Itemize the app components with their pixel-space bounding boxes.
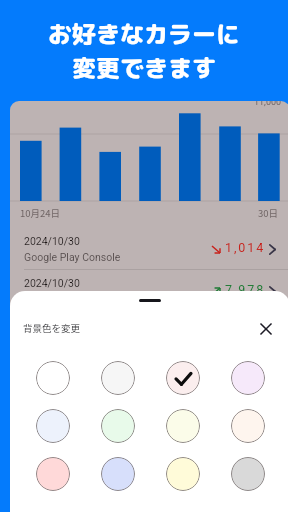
button[interactable]: 背景色を選択 [85, 402, 150, 450]
staticText: 30日 [258, 206, 279, 220]
staticText: 背景色を変更 [23, 321, 81, 335]
staticText: 10月24日 [20, 206, 61, 220]
button[interactable]: 背景色を選択 [20, 402, 85, 450]
staticText: 11,000 [254, 101, 282, 108]
staticText: 2024/10/30 [24, 235, 80, 247]
button[interactable]: 背景色を選択 [20, 450, 85, 498]
button[interactable]: 背景色を選択 [150, 354, 215, 402]
button[interactable]: 背景色を選択 [150, 450, 215, 498]
button[interactable]: 背景色を選択 [85, 450, 150, 498]
button[interactable]: 2024/10/30 [10, 231, 288, 273]
staticText: お好きなカラーに [0, 17, 288, 50]
button[interactable]: 背景色を選択 [215, 450, 280, 498]
staticText: 7,978 [225, 282, 266, 297]
button[interactable]: 背景色を選択 [85, 354, 150, 402]
button[interactable]: 2024/10/30 [10, 273, 288, 315]
button[interactable]: 背景色を選択 [150, 402, 215, 450]
staticText: 変更できます [0, 51, 288, 84]
staticText: 1,014 [225, 240, 266, 255]
staticText: 2024/10/30 [24, 277, 80, 289]
staticText: Google Play Console [24, 251, 121, 263]
button[interactable]: 背景色を選択 [215, 402, 280, 450]
button[interactable]: 背景色を選択 [20, 354, 85, 402]
button[interactable]: 閉じる [255, 318, 277, 340]
button[interactable]: 背景色を選択 [215, 354, 280, 402]
